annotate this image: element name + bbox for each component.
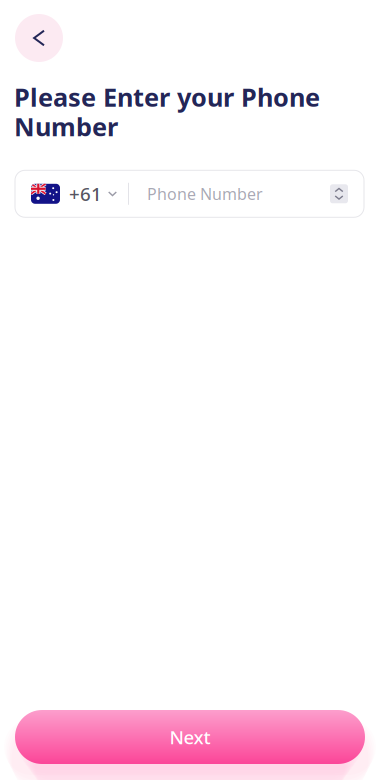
button[interactable]: +61 bbox=[15, 171, 128, 216]
button[interactable]: Next bbox=[15, 710, 365, 764]
staticText: Phone Number bbox=[147, 183, 263, 204]
button[interactable]: Phone Number bbox=[129, 171, 316, 216]
staticText: Please Enter your Phone bbox=[14, 80, 320, 114]
button[interactable]: Back bbox=[15, 14, 63, 62]
button[interactable]: Adjust bbox=[330, 184, 348, 203]
staticText: Next bbox=[169, 725, 210, 749]
staticText: Number bbox=[14, 110, 118, 143]
staticText: +61 bbox=[69, 181, 102, 206]
